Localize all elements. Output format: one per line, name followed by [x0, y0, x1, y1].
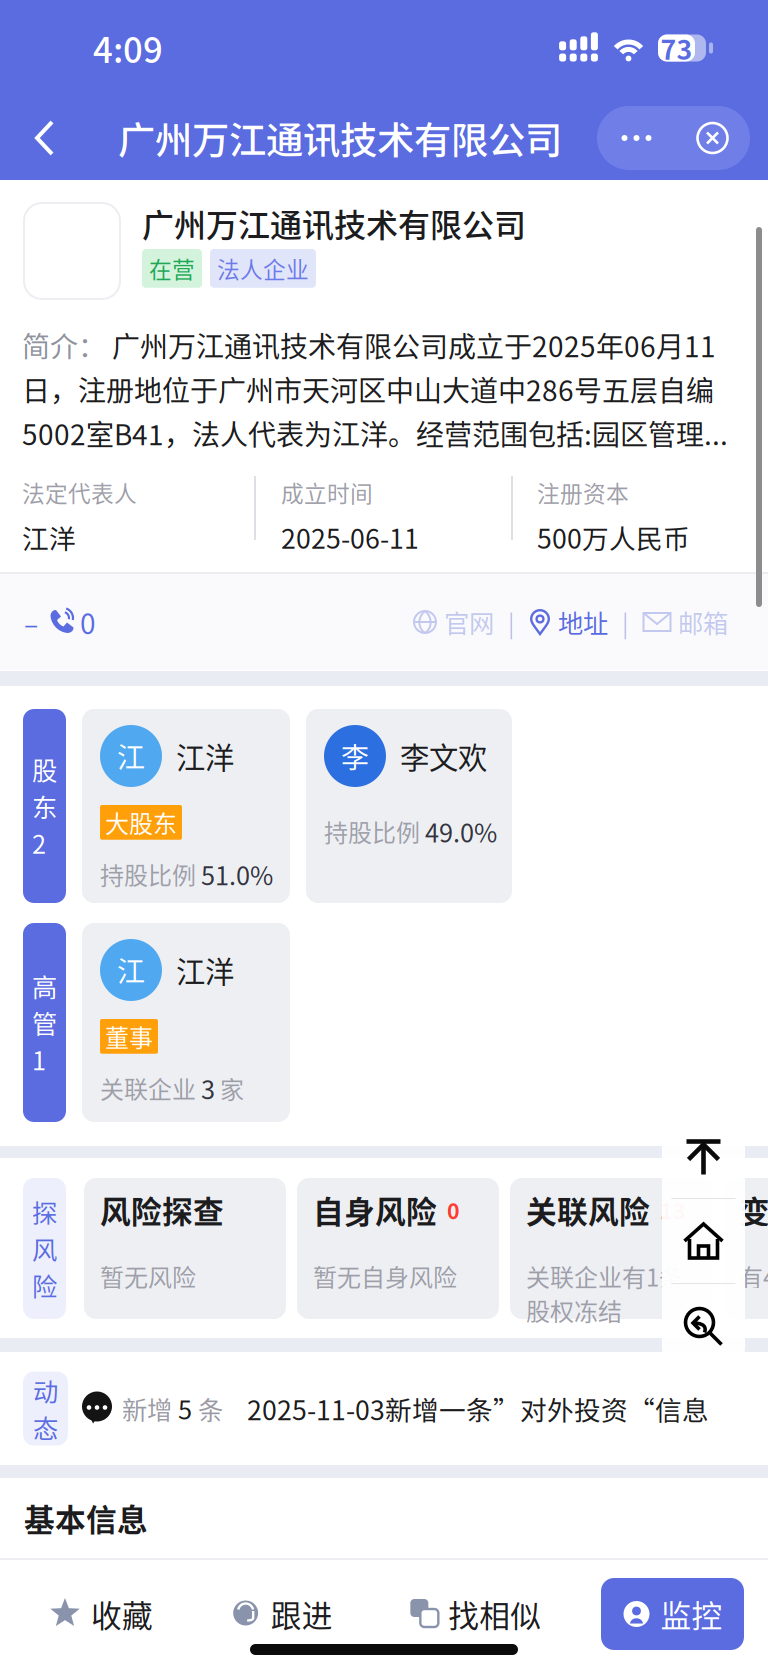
staticText: 江洋: [176, 949, 234, 991]
staticText: 日，注册地位于广州市天河区中山大道中286号五层自编: [22, 369, 714, 409]
staticText: 新增: [122, 1390, 172, 1427]
staticText: 5: [172, 1390, 198, 1427]
staticText: 持股比例: [324, 814, 425, 849]
staticText: –: [24, 603, 38, 641]
staticText: 0: [447, 1195, 460, 1225]
staticText: 有4条: [739, 1259, 768, 1293]
staticText: 在营: [149, 252, 195, 285]
button[interactable]: 股 东 2: [23, 709, 66, 903]
staticText: 关联风险: [526, 1188, 650, 1232]
button[interactable]: 江: [82, 709, 290, 903]
button[interactable]: Home: [662, 1199, 745, 1283]
staticText: 广州万江通讯技术有限公司: [142, 200, 526, 246]
button[interactable]: 关联风险: [510, 1178, 712, 1319]
staticText: 法定代表人: [22, 476, 137, 509]
staticText: 成立时间: [281, 476, 373, 509]
staticText: 3: [201, 1070, 215, 1106]
staticText: 监控: [660, 1592, 722, 1636]
staticText: 股 东 2: [32, 751, 57, 861]
staticText: 持股比例: [100, 857, 201, 891]
button[interactable]: 变更: [723, 1178, 768, 1319]
button[interactable]: Back: [0, 96, 90, 180]
staticText: 跟进: [271, 1592, 333, 1636]
staticText: 51.0%: [201, 856, 273, 892]
staticText: 找相似: [448, 1592, 541, 1636]
staticText: 江: [117, 950, 145, 990]
button[interactable]: More: [597, 107, 675, 169]
staticText: 江洋: [176, 735, 234, 777]
staticText: 简介：: [22, 325, 106, 365]
staticText: 4:09: [93, 23, 163, 73]
staticText: 广州万江通讯技术有限公司: [118, 111, 562, 165]
staticText: 动 态: [33, 1372, 58, 1445]
staticText: 注册资本: [537, 476, 629, 509]
staticText: 董事: [105, 1019, 153, 1054]
staticText: 500万人民币: [537, 518, 690, 556]
staticText: 邮箱: [678, 604, 728, 640]
button[interactable]: 收藏: [31, 1578, 171, 1650]
staticText: 广州万江通讯技术有限公司成立于2025年06月11: [106, 325, 716, 365]
staticText: 探 风 险: [32, 1193, 57, 1303]
staticText: 13: [660, 1195, 686, 1225]
staticText: 股权冻结: [526, 1293, 622, 1327]
button[interactable]: 监控: [601, 1578, 744, 1650]
staticText: 江: [117, 736, 145, 776]
button[interactable]: 邮箱: [642, 604, 728, 640]
staticText: 李: [341, 736, 369, 776]
staticText: 73: [660, 29, 692, 67]
staticText: 风险探查: [100, 1188, 224, 1232]
button[interactable]: Search: [662, 1284, 745, 1369]
staticText: 关联企业有1条: [526, 1259, 683, 1293]
staticText: 高 管 1: [32, 967, 57, 1077]
staticText: 李文欢: [400, 735, 487, 777]
staticText: 法人企业: [217, 252, 309, 285]
button[interactable]: 动 态: [23, 1371, 68, 1445]
button[interactable]: Close: [675, 107, 749, 169]
button[interactable]: 探 风 险: [23, 1178, 66, 1319]
button[interactable]: 江: [82, 923, 290, 1122]
button[interactable]: 地址: [528, 604, 608, 640]
staticText: 暂无自身风险: [313, 1259, 457, 1293]
staticText: 条: [198, 1390, 223, 1427]
button[interactable]: 官网: [412, 604, 494, 640]
button[interactable]: 高 管 1: [23, 923, 66, 1122]
staticText: 官网: [444, 604, 494, 640]
staticText: |: [508, 605, 514, 639]
button[interactable]: 自身风险: [297, 1178, 499, 1319]
staticText: 基本信息: [24, 1496, 148, 1540]
staticText: 2025-06-11: [281, 518, 419, 556]
staticText: 大股东: [105, 805, 177, 840]
button[interactable]: 李: [306, 709, 512, 903]
staticText: 家: [215, 1071, 244, 1105]
staticText: 0: [80, 602, 96, 642]
button[interactable]: 风险探查: [84, 1178, 286, 1319]
button[interactable]: 找相似: [392, 1578, 559, 1650]
staticText: 自身风险: [313, 1188, 437, 1232]
button[interactable]: 跟进: [213, 1578, 351, 1650]
staticText: 49.0%: [425, 813, 497, 850]
staticText: |: [622, 605, 628, 639]
staticText: 暂无风险: [100, 1259, 196, 1293]
staticText: 2025-11-03新增一条”对外投资“信息: [247, 1389, 709, 1428]
staticText: 地址: [558, 604, 608, 640]
staticText: 关联企业: [100, 1071, 201, 1105]
button[interactable]: Scroll to top: [662, 1117, 745, 1198]
staticText: 变更: [739, 1188, 768, 1232]
staticText: 5002室B41，法人代表为江洋。经营范围包括:园区管理...: [22, 413, 728, 453]
staticText: 江洋: [22, 518, 76, 556]
staticText: 收藏: [91, 1592, 153, 1636]
